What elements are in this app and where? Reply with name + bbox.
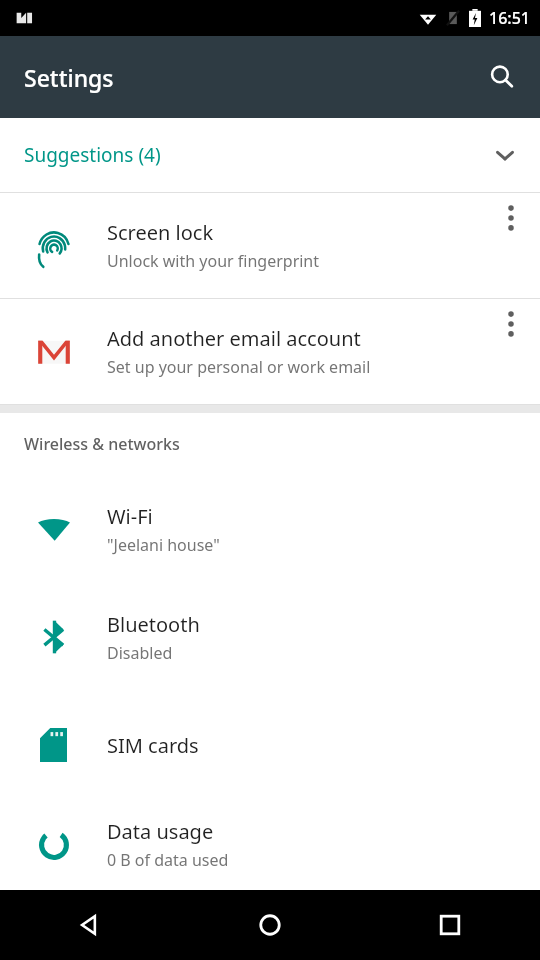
staticText: Data usage [107, 818, 214, 845]
staticText: 0 B of data used [107, 849, 229, 871]
staticText: Wireless & networks [24, 433, 180, 455]
staticText: SIM cards [107, 732, 199, 759]
staticText: Unlock with your fingerprint [107, 250, 320, 272]
button[interactable]: Search [478, 53, 526, 101]
staticText: Add another email account [107, 325, 361, 352]
staticText: Suggestions (4) [24, 142, 161, 168]
staticText: Screen lock [107, 219, 214, 246]
button[interactable]: Add another email account [0, 299, 540, 404]
button[interactable]: More options [482, 299, 540, 404]
button[interactable]: Data usage [0, 799, 540, 890]
staticText: Wi-Fi [107, 503, 153, 530]
button[interactable]: Suggestions (4) [0, 118, 540, 192]
staticText: Settings [24, 62, 114, 93]
staticText: 16:51 [489, 7, 530, 29]
button[interactable]: Home [180, 890, 360, 960]
staticText: Disabled [107, 642, 173, 664]
staticText: "Jeelani house" [107, 534, 220, 556]
staticText: Set up your personal or work email [107, 356, 371, 378]
button[interactable]: Recent apps [360, 890, 540, 960]
button[interactable]: Screen lock [0, 193, 540, 298]
button[interactable]: Bluetooth [0, 583, 540, 691]
button[interactable]: Wi-Fi [0, 475, 540, 583]
button[interactable]: More options [482, 193, 540, 298]
button[interactable]: Back [0, 890, 180, 960]
staticText: Bluetooth [107, 611, 200, 638]
button[interactable]: SIM cards [0, 691, 540, 799]
